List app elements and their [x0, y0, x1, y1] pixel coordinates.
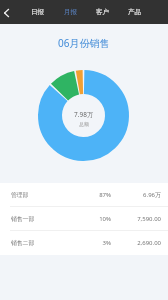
staticText: 总额 — [79, 121, 89, 127]
staticText: 月报 — [64, 8, 77, 16]
staticText: 销售一部 — [11, 215, 35, 222]
staticText: 客户 — [96, 8, 109, 16]
button[interactable]: 日报 — [26, 0, 49, 24]
staticText: 06月份销售 — [58, 36, 110, 50]
staticText: 6.96万 — [129, 191, 161, 199]
staticText: 3% — [87, 239, 111, 247]
button[interactable]: 客户 — [91, 0, 114, 24]
staticText: 87% — [87, 191, 111, 199]
button[interactable]: 产品 — [123, 0, 146, 24]
button[interactable]: 销售一部 — [0, 207, 168, 230]
button[interactable]: 销售二部 — [0, 231, 168, 254]
button[interactable]: 月报 — [59, 0, 82, 24]
button[interactable]: 管理部 — [0, 183, 168, 206]
button[interactable]: Back — [0, 0, 16, 24]
staticText: 产品 — [128, 8, 141, 16]
staticText: 日报 — [31, 8, 44, 16]
staticText: 7,590.00 — [129, 215, 161, 223]
staticText: 7.98万 — [74, 110, 94, 119]
staticText: 2,690.00 — [129, 239, 161, 247]
staticText: 10% — [87, 215, 111, 223]
staticText: 管理部 — [11, 191, 29, 198]
staticText: 销售二部 — [11, 239, 35, 246]
